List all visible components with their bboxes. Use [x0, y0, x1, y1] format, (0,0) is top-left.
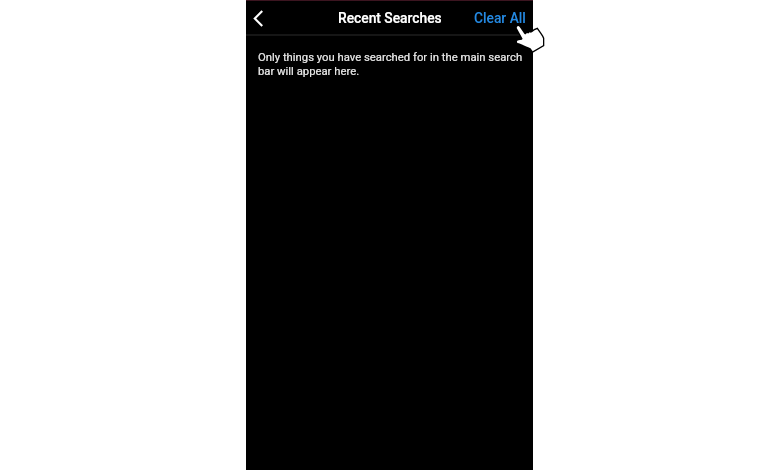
- button[interactable]: Clear All: [474, 1, 533, 34]
- staticText: Recent Searches: [338, 10, 442, 26]
- staticText: Clear All: [474, 10, 526, 26]
- button[interactable]: Back: [246, 6, 270, 30]
- staticText: Only things you have searched for in the…: [258, 51, 523, 64]
- staticText: bar will appear here.: [258, 65, 360, 78]
